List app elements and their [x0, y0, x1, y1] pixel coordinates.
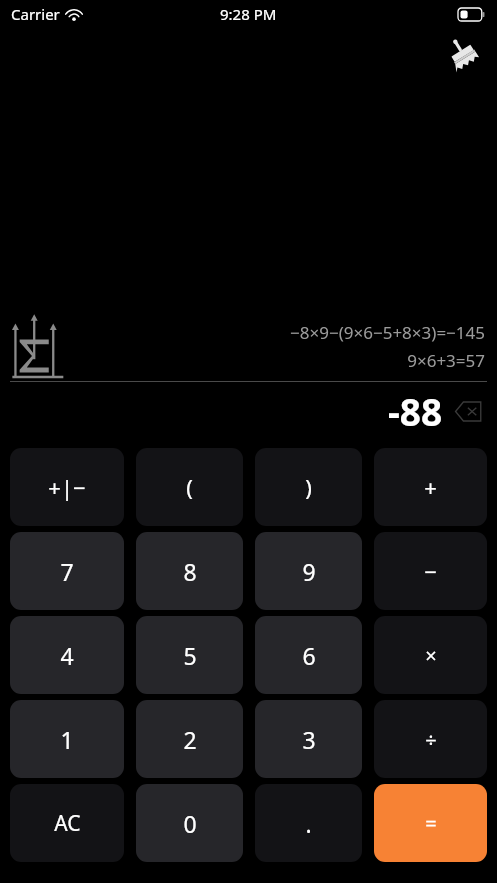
staticText: 6	[302, 640, 316, 671]
staticText: 9	[302, 556, 316, 587]
staticText: 9×6+3=57	[407, 349, 485, 372]
button[interactable]: AC	[10, 784, 124, 862]
staticText: +	[424, 472, 437, 502]
staticText: )	[305, 472, 312, 502]
button[interactable]: =	[374, 784, 487, 862]
button[interactable]: 4	[10, 616, 124, 694]
staticText: 3	[302, 724, 316, 755]
button[interactable]: 7	[10, 532, 124, 610]
button[interactable]: )	[255, 448, 362, 526]
button[interactable]: 6	[255, 616, 362, 694]
button[interactable]: 5	[136, 616, 243, 694]
staticText: −	[424, 556, 437, 586]
button[interactable]: +|−	[10, 448, 124, 526]
staticText: −8×9−(9×6−5+8×3)=−145	[290, 321, 485, 344]
button[interactable]: 0	[136, 784, 243, 862]
staticText: =	[425, 810, 437, 837]
button[interactable]: 2	[136, 700, 243, 778]
button[interactable]: .	[255, 784, 362, 862]
staticText: AC	[54, 809, 81, 838]
button[interactable]: 9	[255, 532, 362, 610]
staticText: 0	[183, 808, 197, 839]
staticText: 7	[60, 556, 74, 587]
staticText: +|−	[48, 472, 86, 502]
button[interactable]: Clear history	[441, 32, 485, 76]
button[interactable]: History	[6, 310, 68, 382]
staticText: 9:28 PM	[220, 4, 277, 24]
button[interactable]: +	[374, 448, 487, 526]
staticText: 4	[60, 640, 74, 671]
button[interactable]: −	[374, 532, 487, 610]
staticText: 8	[183, 556, 197, 587]
button[interactable]: 1	[10, 700, 124, 778]
button[interactable]: (	[136, 448, 243, 526]
staticText: -88	[388, 386, 443, 436]
staticText: ×	[425, 642, 437, 669]
button[interactable]: ÷	[374, 700, 487, 778]
button[interactable]: 3	[255, 700, 362, 778]
staticText: (	[186, 472, 193, 502]
staticText: ÷	[425, 726, 437, 753]
button[interactable]: ×	[374, 616, 487, 694]
staticText: 2	[183, 724, 197, 755]
button[interactable]: 8	[136, 532, 243, 610]
staticText: .	[305, 808, 312, 839]
staticText: Carrier	[11, 4, 60, 24]
staticText: 5	[183, 640, 197, 671]
button[interactable]: Backspace	[453, 398, 485, 424]
staticText: 1	[60, 724, 74, 755]
